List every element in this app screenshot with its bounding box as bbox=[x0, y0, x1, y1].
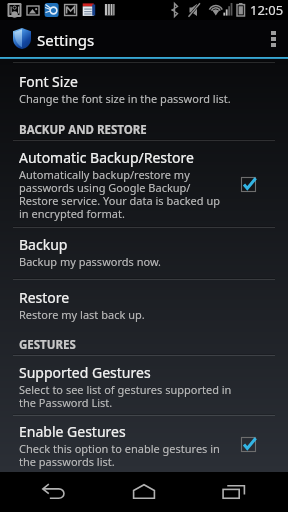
staticText: Automatically backup/restore my password… bbox=[19, 167, 222, 221]
staticText: 12:05 bbox=[250, 1, 284, 19]
staticText: GESTURES bbox=[19, 337, 76, 353]
staticText: Restore my last back up. bbox=[19, 307, 145, 322]
button[interactable]: Font Size bbox=[0, 63, 288, 115]
staticText: Font Size bbox=[19, 72, 78, 91]
button[interactable]: Back bbox=[18, 472, 90, 512]
button[interactable]: Backup bbox=[0, 228, 288, 280]
button[interactable]: Enable Gestures bbox=[0, 416, 288, 472]
staticText: Backup bbox=[19, 235, 68, 254]
staticText: Select to see list of gestures supported… bbox=[19, 382, 236, 410]
button[interactable]: More options bbox=[258, 20, 288, 57]
staticText: Restore bbox=[19, 288, 70, 307]
staticText: Supported Gestures bbox=[19, 363, 151, 382]
staticText: Automatic Backup/Restore bbox=[19, 148, 194, 167]
staticText: Settings bbox=[37, 30, 95, 50]
button[interactable]: Supported Gestures bbox=[0, 356, 288, 416]
staticText: Check this option to enable gestures in … bbox=[19, 441, 222, 469]
staticText: Backup my passwords now. bbox=[19, 254, 162, 269]
staticText: BACKUP AND RESTORE bbox=[19, 122, 147, 138]
button[interactable]: Recent apps bbox=[198, 472, 270, 512]
button[interactable]: Home bbox=[108, 472, 180, 512]
staticText: Enable Gestures bbox=[19, 422, 126, 441]
button[interactable]: Restore bbox=[0, 280, 288, 332]
staticText: Change the font size in the password lis… bbox=[19, 91, 231, 106]
button[interactable]: Automatic Backup/Restore bbox=[0, 141, 288, 228]
